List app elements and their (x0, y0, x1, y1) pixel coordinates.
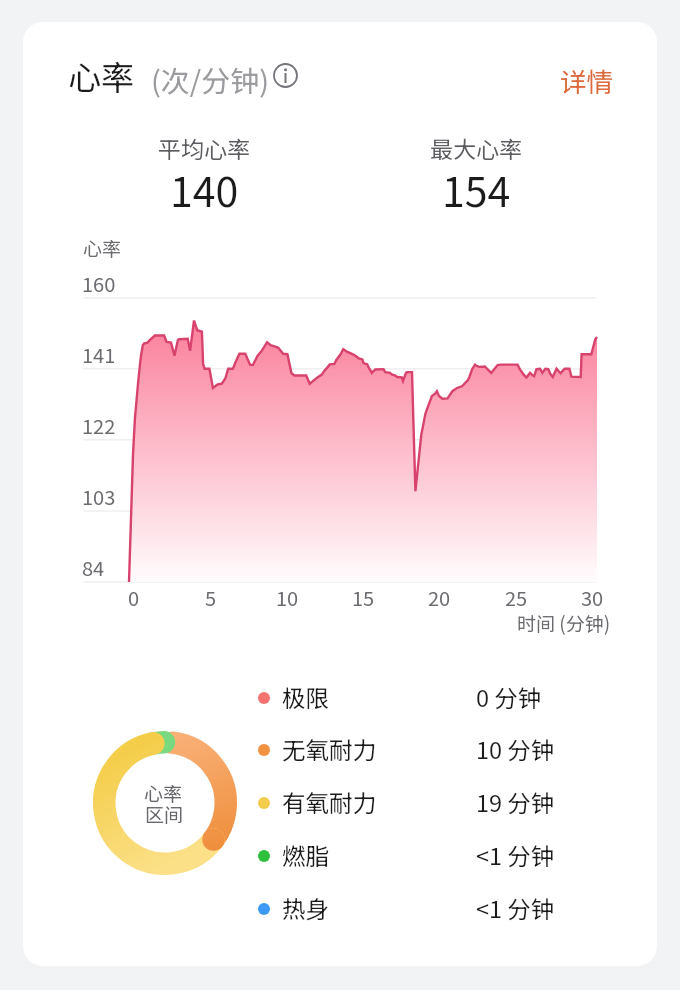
staticText: 140 (170, 159, 239, 218)
button[interactable]: Heart rate zones (93, 731, 237, 875)
button[interactable]: 燃脂 (258, 832, 603, 880)
staticText: <1 分钟 (476, 891, 555, 925)
staticText: 122 (82, 411, 116, 440)
staticText: 心率 (83, 234, 122, 262)
button[interactable]: 有氧耐力 (258, 779, 603, 827)
button[interactable]: 无氧耐力 (258, 726, 603, 774)
staticText: 30 (581, 583, 604, 612)
staticText: 0 (128, 583, 140, 612)
staticText: 无氧耐力 (282, 732, 376, 766)
staticText: 详情 (560, 61, 613, 99)
staticText: 25 (505, 583, 528, 612)
staticText: 心率 (144, 779, 183, 807)
staticText: 燃脂 (282, 838, 329, 872)
staticText: 10 (276, 583, 299, 612)
staticText: 平均心率 (158, 131, 250, 164)
staticText: 20 (428, 583, 451, 612)
staticText: (次/分钟) (151, 58, 269, 100)
staticText: 有氧耐力 (282, 785, 376, 819)
staticText: 区间 (145, 800, 184, 828)
staticText: 141 (82, 340, 116, 369)
staticText: 15 (352, 583, 375, 612)
staticText: 时间 (分钟) (517, 609, 611, 637)
button[interactable]: 心率 (68, 52, 134, 100)
staticText: 84 (82, 553, 105, 582)
staticText: 160 (82, 269, 116, 298)
staticText: 154 (442, 159, 511, 218)
staticText: 心率 (68, 52, 134, 100)
staticText: <1 分钟 (476, 838, 555, 872)
staticText: 热身 (282, 891, 329, 925)
button[interactable]: 极限 (258, 674, 603, 722)
staticText: 103 (82, 482, 116, 511)
button[interactable]: 平均心率 (134, 131, 274, 206)
staticText: 最大心率 (430, 131, 522, 164)
staticText: 19 分钟 (476, 785, 555, 819)
staticText: 5 (205, 583, 217, 612)
button[interactable]: 最大心率 (406, 131, 546, 206)
button[interactable]: 热身 (258, 885, 603, 933)
button[interactable]: 详情 (560, 61, 613, 99)
staticText: 极限 (282, 680, 329, 714)
staticText: 10 分钟 (476, 732, 555, 766)
button[interactable]: Info (273, 63, 298, 88)
staticText: 0 分钟 (476, 680, 542, 714)
